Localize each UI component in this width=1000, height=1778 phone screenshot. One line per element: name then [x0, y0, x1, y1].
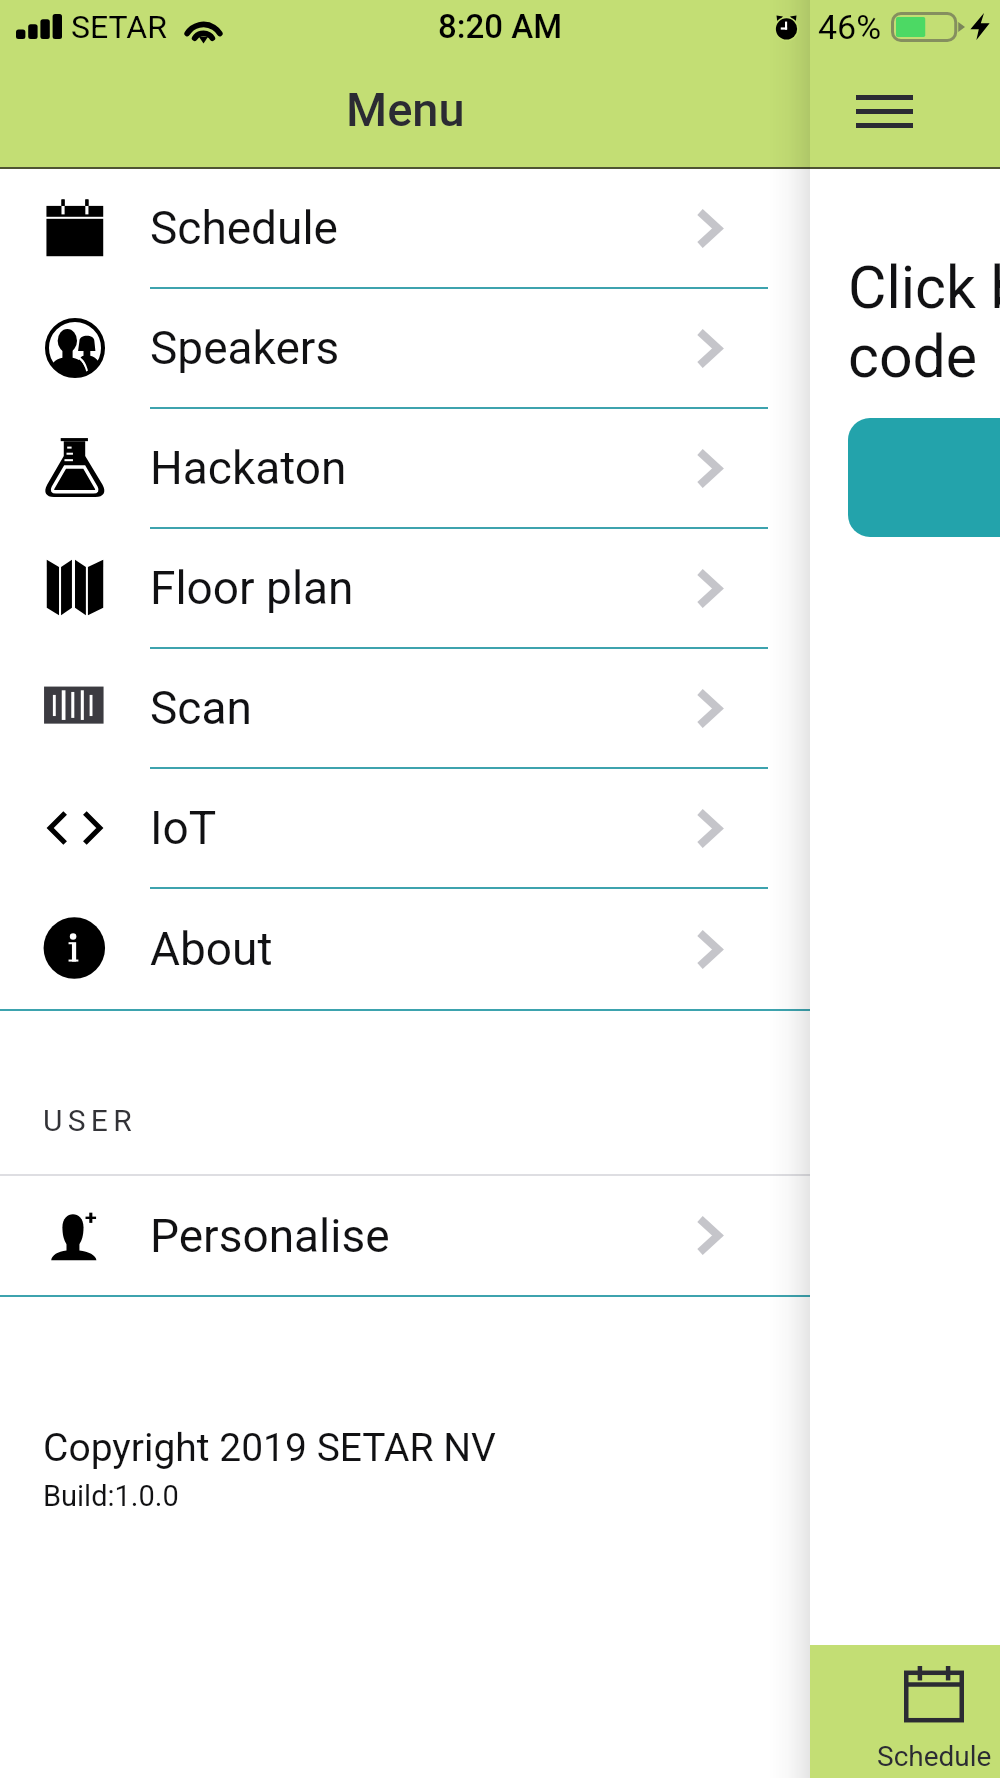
- button[interactable]: Schedule: [819, 1645, 1000, 1778]
- staticText: Personalise: [150, 1209, 390, 1263]
- staticText: 46%: [818, 7, 882, 47]
- button[interactable]: About: [0, 889, 810, 1009]
- button[interactable]: Personalise: [0, 1176, 810, 1295]
- button[interactable]: IoT: [0, 769, 810, 889]
- staticText: Schedule: [877, 1740, 992, 1773]
- button[interactable]: Speakers: [0, 289, 810, 409]
- staticText: SETAR: [71, 8, 167, 46]
- staticText: IoT: [150, 801, 217, 855]
- staticText: Copyright 2019 SETAR NV: [43, 1425, 496, 1471]
- staticText: 8:20 AM: [438, 7, 563, 46]
- staticText: USER: [43, 1103, 138, 1138]
- button[interactable]: Open navigation menu: [832, 66, 936, 156]
- staticText: Hackaton: [150, 441, 347, 495]
- staticText: About: [150, 922, 273, 976]
- button[interactable]: Hackaton: [0, 409, 810, 529]
- staticText: Speakers: [150, 321, 340, 375]
- button[interactable]: Floor plan: [0, 529, 810, 649]
- staticText: Schedule: [150, 201, 338, 255]
- button[interactable]: Schedule: [0, 169, 810, 289]
- button[interactable]: Scan: [0, 649, 810, 769]
- staticText: Build:1.0.0: [43, 1479, 179, 1513]
- staticText: Floor plan: [150, 561, 354, 615]
- staticText: Scan: [150, 681, 252, 735]
- staticText: Click b: [848, 253, 1000, 322]
- staticText: code: [848, 322, 1000, 391]
- button[interactable]: [848, 418, 1000, 537]
- staticText: Menu: [346, 82, 465, 137]
